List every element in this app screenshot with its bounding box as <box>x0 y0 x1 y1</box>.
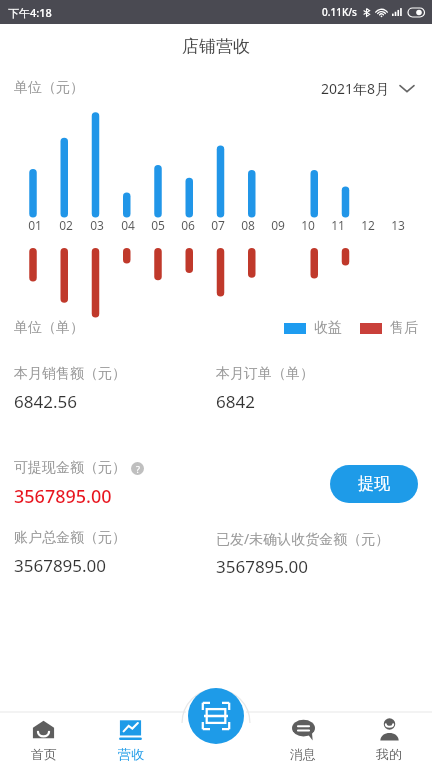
staticText: 店铺营收 <box>182 36 250 57</box>
staticText: 3567895.00 <box>216 555 309 578</box>
staticText: 10 <box>301 217 315 233</box>
staticText: 2021年8月 <box>321 79 390 98</box>
button[interactable]: 营收 <box>87 712 174 768</box>
staticText: 售后 <box>390 319 418 337</box>
staticText: 0.11K/s <box>322 5 357 19</box>
staticText: 本月订单（单） <box>216 365 314 383</box>
staticText: 收益 <box>314 319 342 337</box>
staticText: 08 <box>241 217 255 233</box>
staticText: 11 <box>331 217 345 233</box>
staticText: 已发/未确认收货金额（元） <box>216 529 390 548</box>
button[interactable]: 提现 <box>330 465 418 503</box>
staticText: 消息 <box>290 746 316 762</box>
staticText: 12 <box>361 217 375 233</box>
staticText: 03 <box>90 217 104 233</box>
staticText: 首页 <box>31 746 57 762</box>
button[interactable]: 消息 <box>260 712 346 768</box>
button[interactable]: 帮助 <box>131 462 144 475</box>
staticText: 本月销售额（元） <box>14 365 126 383</box>
staticText: 账户总金额（元） <box>14 529 126 547</box>
staticText: 3567895.00 <box>14 484 112 509</box>
staticText: 06 <box>181 217 195 233</box>
button[interactable]: 首页 <box>0 712 87 768</box>
button[interactable]: 我的 <box>346 712 432 768</box>
staticText: 6842 <box>216 390 255 413</box>
staticText: 我的 <box>376 746 402 762</box>
staticText: 单位（元） <box>14 79 84 97</box>
staticText: 可提现金额（元） <box>14 459 126 477</box>
staticText: 13 <box>391 217 405 233</box>
staticText: 营收 <box>118 746 144 762</box>
staticText: 3567895.00 <box>14 554 107 577</box>
staticText: 下午4:18 <box>8 5 52 20</box>
staticText: 04 <box>121 217 135 233</box>
staticText: 单位（单） <box>14 319 84 337</box>
staticText: 提现 <box>358 474 390 494</box>
button[interactable]: 2021年8月 <box>317 75 418 102</box>
staticText: 01 <box>28 217 42 233</box>
staticText: 09 <box>271 217 285 233</box>
staticText: 02 <box>59 217 73 233</box>
button[interactable]: 扫一扫 <box>188 688 244 744</box>
staticText: 6842.56 <box>14 390 77 413</box>
staticText: 07 <box>211 217 225 233</box>
staticText: 05 <box>151 217 165 233</box>
staticText: ? <box>136 463 140 475</box>
